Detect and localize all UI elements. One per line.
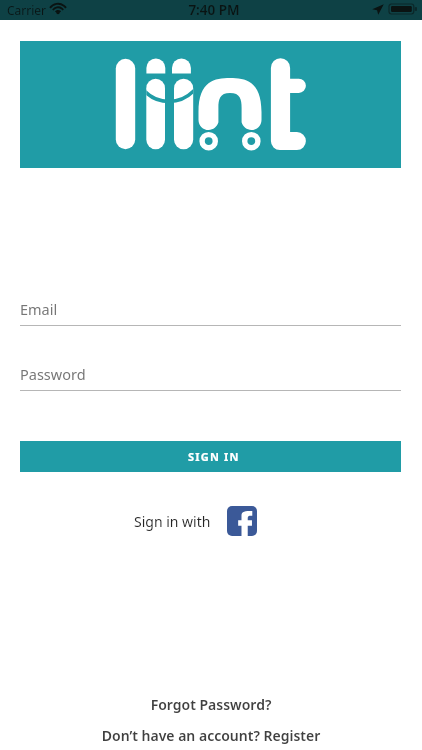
staticText: SIGN IN: [188, 449, 240, 464]
staticText: Password: [20, 364, 86, 384]
staticText: 7:40 PM: [3, 1, 422, 19]
button[interactable]: Forgot Password?: [0, 695, 422, 714]
button[interactable]: Don’t have an account? Register: [0, 726, 422, 745]
staticText: Sign in with: [134, 512, 211, 531]
staticText: Email: [20, 299, 58, 319]
button[interactable]: Sign in with Facebook: [134, 506, 257, 536]
staticText: Carrier: [7, 2, 47, 18]
button[interactable]: SIGN IN: [20, 441, 401, 472]
